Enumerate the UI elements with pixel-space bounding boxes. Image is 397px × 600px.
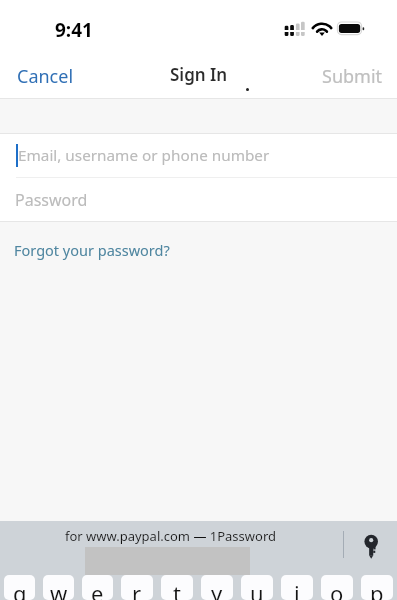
staticText: i bbox=[294, 578, 300, 600]
staticText: o bbox=[330, 578, 344, 600]
staticText: r bbox=[132, 578, 142, 600]
button[interactable]: Forgot your password? bbox=[0, 238, 182, 262]
button[interactable]: i bbox=[281, 575, 313, 600]
staticText: e bbox=[91, 578, 104, 600]
button[interactable]: p bbox=[361, 575, 393, 600]
button[interactable]: y bbox=[201, 575, 233, 600]
staticText: Forgot your password? bbox=[14, 240, 170, 260]
button[interactable]: t bbox=[161, 575, 193, 600]
button[interactable]: Email, username or phone number bbox=[0, 134, 397, 177]
staticText: for www.paypal.com — 1Password bbox=[65, 527, 277, 545]
staticText: p bbox=[370, 578, 384, 600]
button[interactable]: q bbox=[4, 575, 35, 600]
button[interactable]: w bbox=[43, 575, 74, 600]
staticText: y bbox=[211, 578, 223, 600]
button[interactable]: Cancel bbox=[3, 58, 88, 95]
staticText: Email, username or phone number bbox=[18, 145, 270, 166]
staticText: Sign In bbox=[170, 63, 228, 86]
button[interactable]: o bbox=[321, 575, 353, 600]
staticText: Password bbox=[15, 189, 88, 211]
staticText: 9:41 bbox=[55, 17, 93, 43]
staticText: w bbox=[50, 578, 68, 600]
button[interactable]: u bbox=[241, 575, 273, 600]
staticText: Submit bbox=[322, 64, 383, 89]
button[interactable]: Password bbox=[0, 178, 397, 221]
staticText: q bbox=[13, 578, 27, 600]
staticText: u bbox=[250, 578, 264, 600]
button[interactable]: e bbox=[82, 575, 113, 600]
button[interactable]: r bbox=[121, 575, 153, 600]
staticText: Cancel bbox=[17, 64, 74, 89]
staticText: t bbox=[173, 578, 181, 600]
button[interactable]: 1Password bbox=[357, 532, 387, 566]
button[interactable]: Submit bbox=[308, 58, 397, 95]
